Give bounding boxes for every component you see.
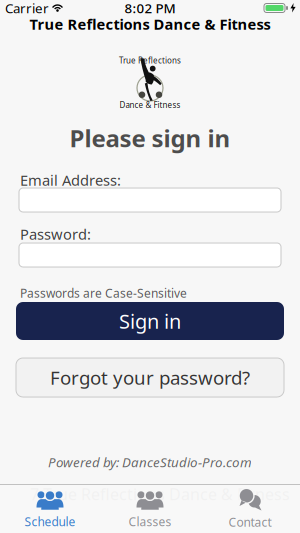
staticText: 8:02 PM <box>124 0 175 17</box>
button[interactable]: Powered by: DanceStudio-Pro.com <box>48 455 252 469</box>
staticText: Sign in <box>119 308 181 334</box>
staticText: Schedule <box>24 513 75 529</box>
staticText: Password: <box>20 224 91 244</box>
staticText: Please sign in <box>69 122 230 154</box>
staticText: True Reflections <box>119 55 181 66</box>
staticText: Email Address: <box>20 170 121 190</box>
staticText: Forgot your password? <box>50 365 250 390</box>
button[interactable]: Sign in <box>0 302 300 340</box>
staticText: Passwords are Case-Sensitive <box>20 285 187 301</box>
staticText: Dance & Fitness <box>119 100 180 110</box>
staticText: Contact <box>228 514 271 530</box>
button[interactable]: Forgot your password? <box>0 358 300 397</box>
staticText: Powered by: DanceStudio-Pro.com <box>48 453 252 471</box>
button[interactable] <box>0 188 300 212</box>
staticText: 7 True Reflections Dance & Fitness <box>30 483 290 505</box>
button[interactable]: Schedule <box>0 486 100 532</box>
button[interactable] <box>0 243 300 267</box>
button[interactable]: Classes <box>100 486 200 532</box>
button[interactable]: Contact <box>200 486 300 532</box>
staticText: Carrier <box>5 0 49 17</box>
staticText: True Reflections Dance & Fitness <box>29 14 270 34</box>
staticText: Classes <box>128 513 171 529</box>
